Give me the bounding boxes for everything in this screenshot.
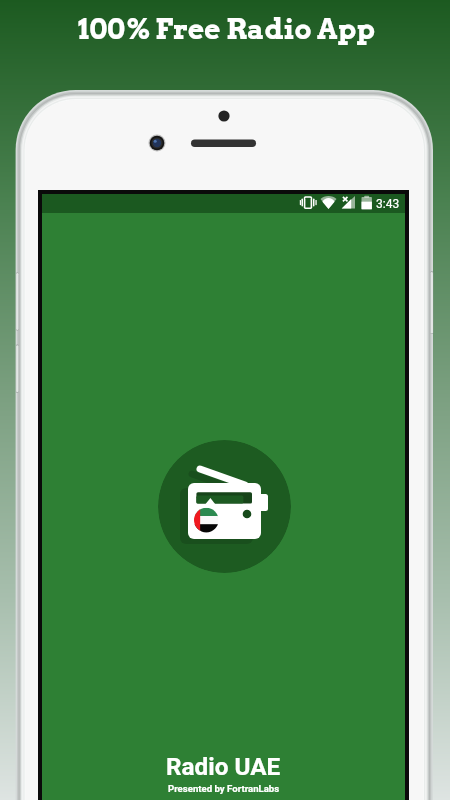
staticText: Presented by FortranLabs (168, 783, 280, 794)
staticText: 3:43 (376, 197, 400, 211)
staticText: 100% Free Radio App (78, 12, 375, 46)
button[interactable]: Radio UAE app icon (158, 440, 291, 573)
staticText: Radio UAE (166, 752, 281, 780)
